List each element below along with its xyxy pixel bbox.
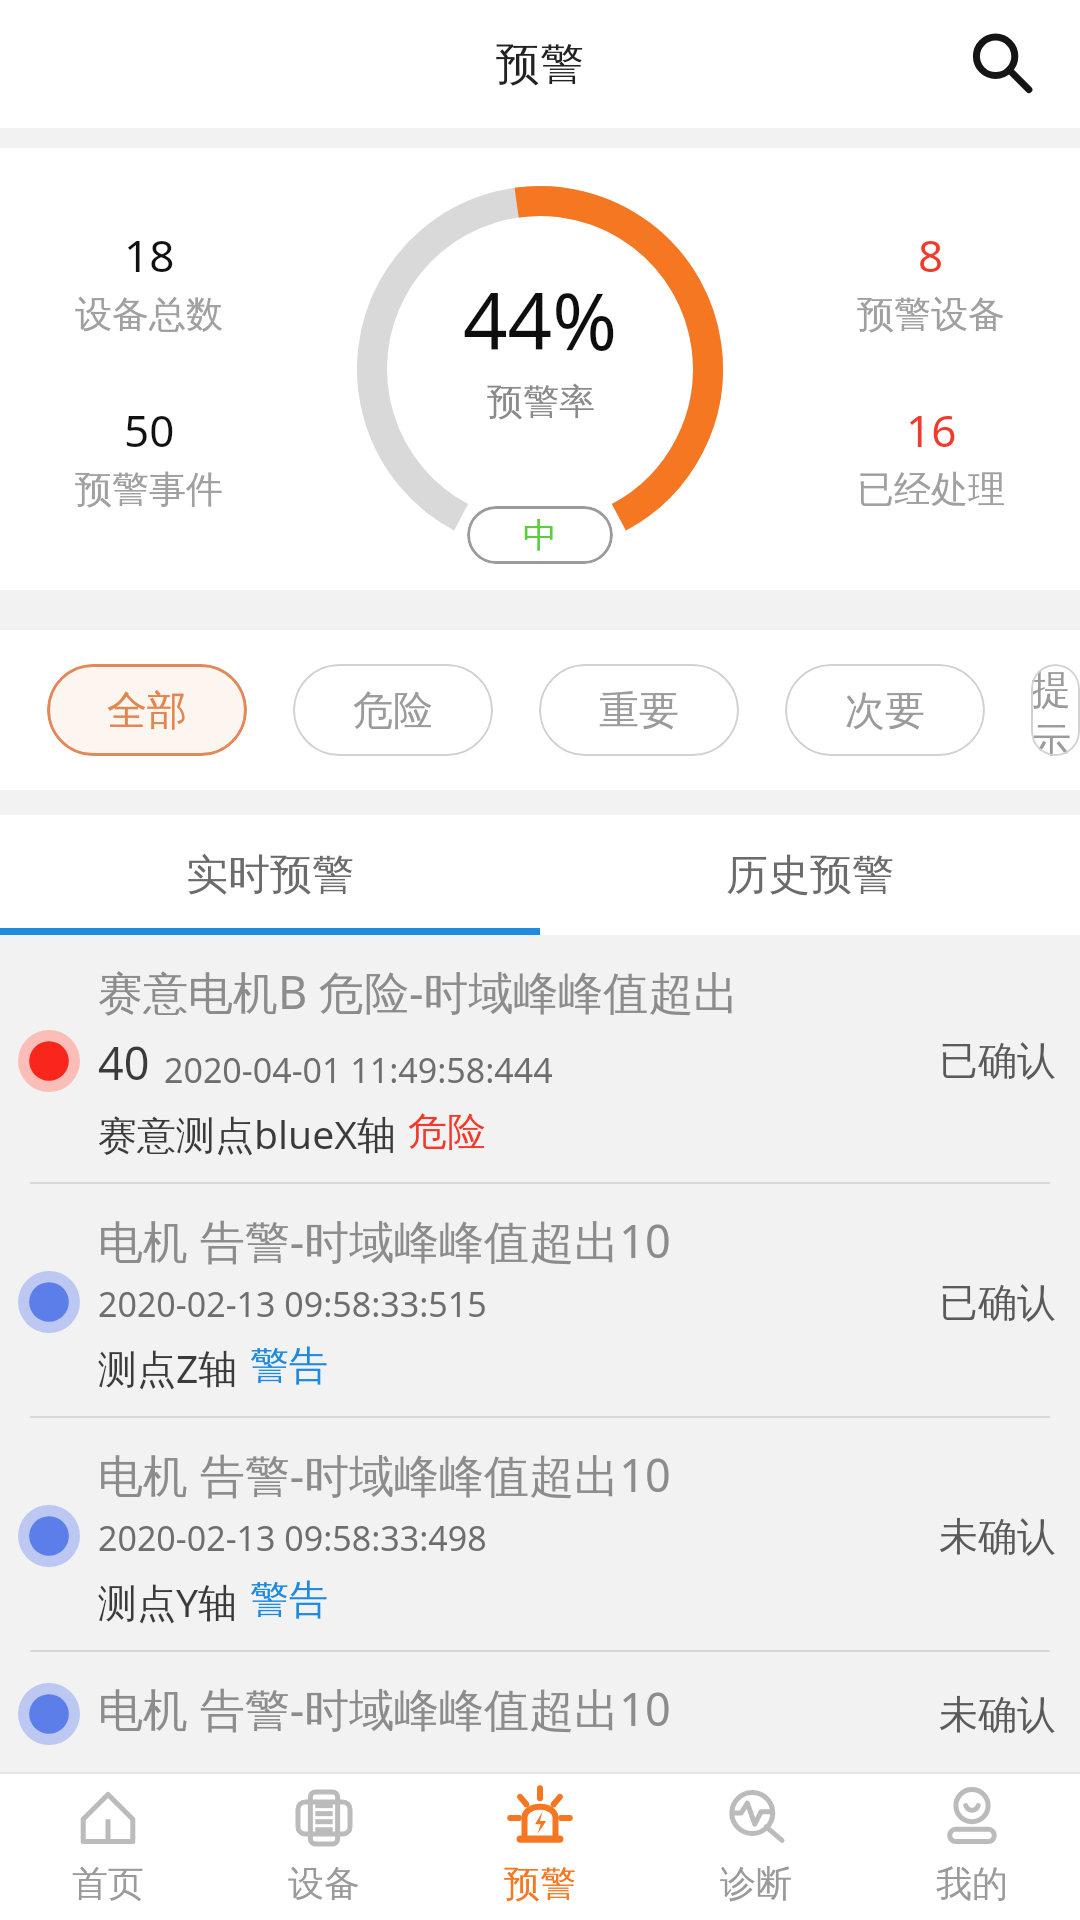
staticText: 赛意电机B 危险-时域峰峰值超出	[98, 961, 739, 1022]
staticText: 电机 告警-时域峰峰值超出10	[98, 1678, 671, 1739]
button[interactable]: 预警	[432, 1772, 648, 1920]
staticText: 预警设备	[857, 291, 1005, 338]
staticText: 未确认	[939, 1512, 1056, 1561]
staticText: 已确认	[939, 1278, 1056, 1327]
staticText: 电机 告警-时域峰峰值超出10	[98, 1444, 671, 1505]
staticText: 预警率	[487, 379, 595, 424]
button[interactable]: 首页	[0, 1772, 216, 1920]
staticText: 提示	[1031, 664, 1080, 756]
staticText: 2020-04-01 11:49:58:444	[164, 1047, 553, 1093]
staticText: 18	[124, 225, 175, 285]
staticText: 预警事件	[75, 466, 223, 513]
staticText: 全部	[107, 685, 187, 735]
staticText: 测点Z轴	[98, 1341, 238, 1394]
staticText: 诊断	[720, 1861, 792, 1906]
button[interactable]: 中	[467, 506, 613, 564]
staticText: 2020-02-13 09:58:33:498	[98, 1515, 487, 1561]
staticText: 设备总数	[75, 291, 223, 338]
staticText: 40	[98, 1032, 150, 1093]
button[interactable]: 提示	[1031, 664, 1080, 756]
button[interactable]: 诊断	[648, 1772, 864, 1920]
button[interactable]: 历史预警	[540, 815, 1080, 935]
staticText: 警告	[250, 1341, 328, 1390]
staticText: 重要	[599, 685, 679, 735]
staticText: 16	[906, 400, 957, 460]
staticText: 警告	[250, 1575, 328, 1624]
staticText: 首页	[72, 1861, 144, 1906]
button[interactable]: 全部	[47, 664, 247, 756]
staticText: 中	[523, 514, 557, 557]
button[interactable]: 实时预警	[0, 815, 540, 935]
button[interactable]: 电机 告警-时域峰峰值超出10	[0, 1184, 1080, 1418]
staticText: 危险	[353, 685, 433, 735]
staticText: 危险	[408, 1107, 486, 1156]
staticText: 50	[124, 400, 175, 460]
staticText: 已经处理	[857, 466, 1005, 513]
button[interactable]: Search	[954, 16, 1050, 112]
staticText: 次要	[845, 685, 925, 735]
staticText: 预警	[504, 1861, 576, 1906]
button[interactable]: 电机 告警-时域峰峰值超出10	[0, 1652, 1080, 1772]
button[interactable]: 我的	[864, 1772, 1080, 1920]
staticText: 设备	[288, 1861, 360, 1906]
staticText: 预警	[496, 37, 584, 92]
staticText: 44%	[463, 267, 618, 373]
staticText: 2020-02-13 09:58:33:515	[98, 1281, 487, 1327]
button[interactable]: 重要	[539, 664, 739, 756]
button[interactable]: 电机 告警-时域峰峰值超出10	[0, 1418, 1080, 1652]
staticText: 历史预警	[726, 849, 894, 902]
staticText: 实时预警	[186, 849, 354, 902]
staticText: 8	[918, 225, 944, 285]
staticText: 未确认	[939, 1690, 1056, 1739]
button[interactable]: 设备	[216, 1772, 432, 1920]
button[interactable]: 次要	[785, 664, 985, 756]
button[interactable]: 赛意电机B 危险-时域峰峰值超出	[0, 935, 1080, 1184]
staticText: 赛意测点blueX轴	[98, 1107, 396, 1160]
staticText: 电机 告警-时域峰峰值超出10	[98, 1210, 671, 1271]
staticText: 测点Y轴	[98, 1575, 238, 1628]
staticText: 我的	[936, 1861, 1008, 1906]
staticText: 已确认	[939, 1036, 1056, 1085]
button[interactable]: 危险	[293, 664, 493, 756]
